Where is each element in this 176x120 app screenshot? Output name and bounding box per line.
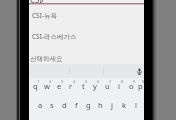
- staticText: CSI-뉴욕: [32, 11, 57, 20]
- staticText: d: [62, 100, 67, 110]
- staticText: q: [33, 81, 38, 91]
- staticText: CSI: [30, 0, 43, 5]
- staticText: e: [57, 81, 62, 91]
- staticText: 4: [73, 79, 76, 84]
- staticText: 3: [61, 79, 64, 84]
- button[interactable]: s: [46, 97, 58, 115]
- button[interactable]: Voice input: [136, 68, 143, 75]
- staticText: y: [93, 81, 97, 91]
- staticText: j: [111, 100, 113, 110]
- button[interactable]: 7: [101, 78, 113, 96]
- staticText: i: [118, 81, 120, 91]
- button[interactable]: 5: [77, 78, 89, 96]
- button[interactable]: 9: [125, 78, 137, 96]
- staticText: 7: [109, 79, 112, 84]
- button[interactable]: d: [58, 97, 70, 115]
- staticText: a: [38, 100, 43, 110]
- staticText: CSI-라스베가스: [32, 32, 77, 41]
- staticText: 1: [37, 79, 40, 84]
- staticText: l: [135, 100, 137, 110]
- button[interactable]: f: [70, 97, 82, 115]
- button[interactable]: g: [82, 97, 94, 115]
- staticText: 2: [49, 79, 52, 84]
- staticText: 선택하세요: [30, 55, 63, 63]
- button[interactable]: 2: [41, 78, 53, 96]
- button[interactable]: 선택하세요: [29, 53, 144, 64]
- button[interactable]: 1: [29, 78, 41, 96]
- staticText: 0: [142, 79, 145, 84]
- staticText: h: [98, 100, 103, 110]
- staticText: p: [138, 81, 143, 91]
- button[interactable]: CSI-뉴욕: [29, 10, 144, 21]
- button[interactable]: 4: [65, 78, 77, 96]
- staticText: o: [129, 81, 134, 91]
- button[interactable]: 0: [137, 78, 144, 96]
- staticText: 6: [97, 79, 100, 84]
- button[interactable]: 3: [53, 78, 65, 96]
- staticText: w: [44, 81, 50, 91]
- button[interactable]: l: [130, 97, 142, 115]
- button[interactable]: 6: [89, 78, 101, 96]
- button[interactable]: CSI-라스베가스: [29, 31, 144, 42]
- staticText: t: [82, 81, 85, 91]
- staticText: 5: [85, 79, 88, 84]
- staticText: s: [50, 100, 54, 110]
- button[interactable]: j: [106, 97, 118, 115]
- button[interactable]: h: [94, 97, 106, 115]
- button[interactable]: k: [118, 97, 130, 115]
- staticText: k: [122, 100, 127, 110]
- staticText: 9: [133, 79, 136, 84]
- button[interactable]: a: [34, 97, 46, 115]
- staticText: f: [75, 100, 78, 110]
- staticText: g: [86, 100, 91, 110]
- staticText: u: [105, 81, 110, 91]
- staticText: r: [69, 81, 73, 91]
- staticText: 8: [121, 79, 124, 84]
- button[interactable]: 8: [113, 78, 125, 96]
